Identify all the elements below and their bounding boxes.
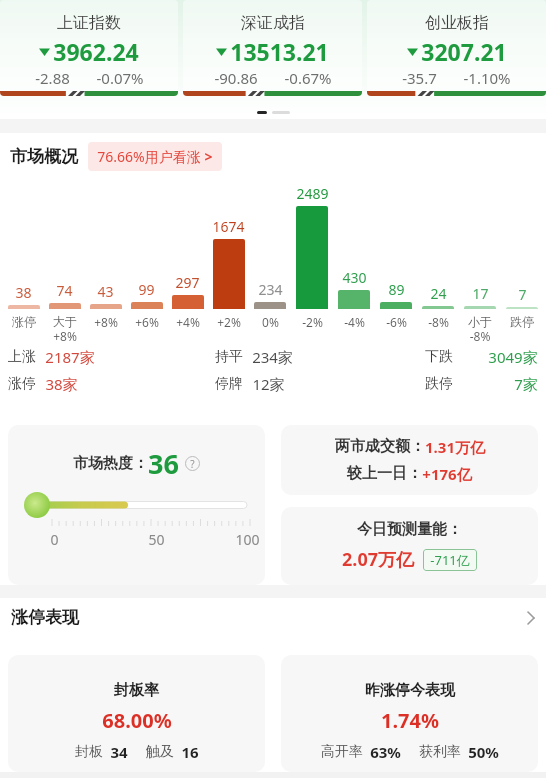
staticText: 17	[472, 284, 489, 303]
staticText: 小于 -8%	[468, 314, 492, 344]
staticText: -711亿	[430, 551, 470, 569]
staticText: >	[204, 147, 213, 166]
staticText: 昨涨停今表现	[365, 681, 455, 700]
staticText: 高开率	[321, 743, 363, 761]
staticText: 0	[50, 530, 59, 548]
staticText: 16	[181, 742, 199, 762]
staticText: 99	[138, 280, 155, 299]
staticText: 68.00%	[102, 707, 172, 734]
button[interactable]: 两市成交额：	[281, 425, 538, 495]
staticText: +8%	[94, 314, 118, 330]
staticText: 上涨	[8, 348, 36, 366]
staticText: 上证指数	[57, 13, 121, 33]
staticText: 34	[110, 742, 128, 762]
staticText: 封板	[75, 743, 103, 761]
staticText: 涨停表现	[11, 607, 79, 628]
staticText: 1.74%	[381, 707, 439, 734]
button[interactable]: 涨停表现	[11, 607, 535, 628]
staticText: 43	[97, 282, 114, 301]
staticText: 下跌	[425, 348, 453, 366]
staticText: 89	[388, 280, 405, 299]
staticText: 3962.24	[53, 36, 139, 67]
staticText: -8%	[428, 314, 449, 330]
staticText: 获利率	[419, 743, 461, 761]
staticText: 1674	[212, 217, 245, 236]
staticText: 持平	[215, 348, 243, 366]
staticText: 1.31万亿	[425, 437, 485, 457]
staticText: 234家	[252, 347, 293, 367]
staticText: 76.66%用户看涨	[97, 147, 201, 166]
staticText: 触及	[146, 743, 174, 761]
button[interactable]: 今日预测量能：	[281, 507, 538, 585]
staticText: 7	[518, 285, 527, 304]
staticText: 涨停	[12, 314, 36, 329]
staticText: -90.86	[214, 68, 258, 88]
staticText: 两市成交额：	[335, 437, 425, 456]
staticText: 较上一日：	[347, 464, 422, 483]
staticText: -0.07%	[96, 68, 144, 88]
staticText: 100	[235, 530, 260, 548]
staticText: 7家	[514, 374, 538, 394]
staticText: 234	[258, 280, 283, 299]
staticText: +6%	[135, 314, 159, 330]
staticText: 36	[148, 445, 179, 482]
button[interactable]: 封板率	[8, 655, 265, 772]
staticText: 13513.21	[230, 36, 329, 67]
staticText: 2489	[296, 184, 329, 203]
staticText: -1.10%	[463, 68, 511, 88]
button[interactable]: 创业板指	[367, 0, 546, 96]
button[interactable]: 昨涨停今表现	[281, 655, 538, 772]
staticText: 大于 +8%	[53, 314, 77, 344]
staticText: ?	[190, 457, 195, 471]
staticText: 今日预测量能：	[357, 520, 462, 539]
staticText: +4%	[176, 314, 200, 330]
staticText: 50	[148, 530, 165, 548]
staticText: 市场概况	[10, 146, 78, 167]
staticText: 市场热度：	[73, 454, 148, 473]
staticText: 2.07万亿	[342, 547, 414, 572]
staticText: -6%	[386, 314, 407, 330]
staticText: +2%	[217, 314, 241, 330]
staticText: 50%	[468, 742, 499, 762]
staticText: 深证成指	[241, 13, 305, 33]
staticText: 创业板指	[425, 13, 489, 33]
staticText: -2.88	[35, 68, 70, 88]
staticText: 38家	[45, 374, 78, 394]
staticText: 2187家	[45, 347, 95, 367]
staticText: 74	[56, 281, 73, 300]
staticText: 24	[430, 284, 447, 303]
staticText: 涨停	[8, 375, 36, 393]
staticText: 跌停	[510, 314, 534, 329]
staticText: 停牌	[215, 375, 243, 393]
staticText: 430	[342, 268, 367, 287]
staticText: 297	[175, 273, 200, 292]
staticText: +176亿	[422, 464, 472, 484]
button[interactable]: 深证成指	[183, 0, 362, 96]
staticText: -4%	[344, 314, 365, 330]
staticText: 0%	[262, 314, 279, 330]
staticText: 12家	[252, 374, 285, 394]
staticText: 跌停	[425, 375, 453, 393]
button[interactable]: 市场热度：	[8, 425, 265, 585]
staticText: 3049家	[488, 347, 538, 367]
staticText: -2%	[302, 314, 323, 330]
staticText: 封板率	[114, 681, 159, 700]
button[interactable]: 上证指数	[0, 0, 178, 96]
staticText: 38	[15, 283, 32, 302]
staticText: -35.7	[402, 68, 437, 88]
staticText: 63%	[370, 742, 401, 762]
staticText: -0.67%	[284, 68, 332, 88]
staticText: 3207.21	[421, 36, 507, 67]
button[interactable]: 76.66%用户看涨	[88, 142, 222, 171]
